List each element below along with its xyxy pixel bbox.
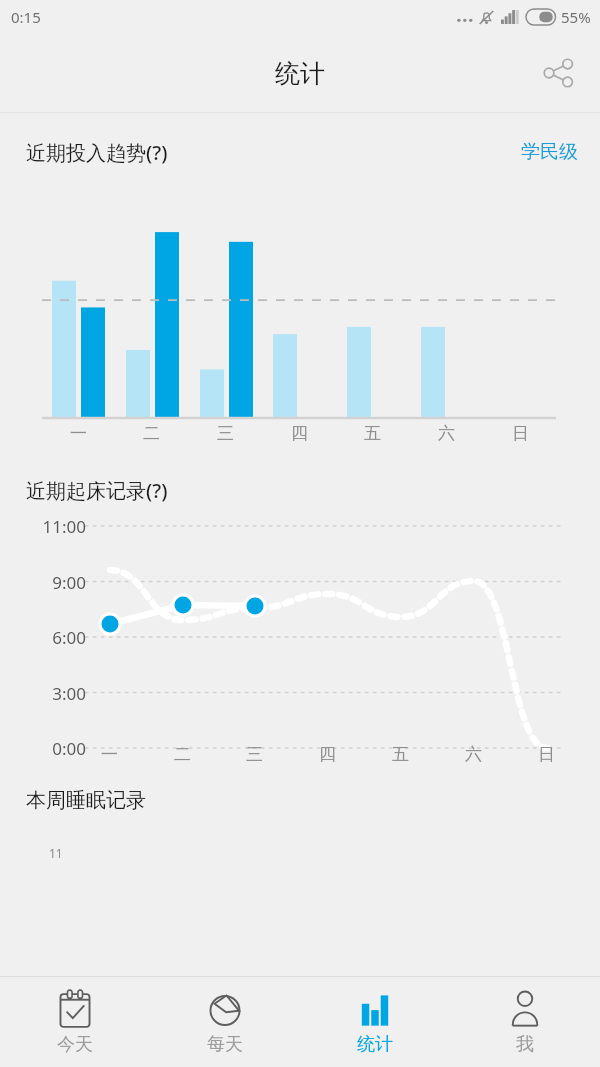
staticText: 0:00 [18, 737, 86, 760]
staticText: 六 [438, 423, 455, 444]
staticText: 9:00 [18, 571, 86, 594]
staticText: 三 [246, 744, 263, 765]
staticText: 55% [561, 7, 591, 27]
staticText: 五 [364, 423, 381, 444]
staticText: 三 [217, 423, 234, 444]
staticText: 每天 [207, 1033, 243, 1056]
staticText: 学民级 [521, 140, 578, 164]
button[interactable]: 我 [450, 977, 600, 1067]
staticText: 统计 [357, 1033, 393, 1056]
staticText: 统计 [275, 58, 325, 89]
staticText: 二 [174, 744, 191, 765]
staticText: 11 [49, 845, 63, 861]
staticText: 6:00 [18, 626, 86, 649]
staticText: 11:00 [18, 515, 86, 538]
staticText: 一 [70, 423, 87, 444]
staticText: 今天 [57, 1033, 93, 1056]
staticText: 日 [512, 423, 529, 444]
staticText: 二 [143, 423, 160, 444]
staticText: 一 [101, 744, 118, 765]
staticText: 日 [538, 744, 555, 765]
staticText: 四 [319, 744, 336, 765]
staticText: 五 [392, 744, 409, 765]
staticText: 近期投入趋势(?) [26, 139, 168, 166]
staticText: 3:00 [18, 682, 86, 705]
staticText: 我 [516, 1033, 534, 1056]
staticText: 0:15 [11, 7, 41, 27]
button[interactable]: 统计 [300, 977, 450, 1067]
staticText: 四 [291, 423, 308, 444]
staticText: 本周睡眠记录 [26, 788, 146, 813]
button[interactable]: 每天 [150, 977, 300, 1067]
button[interactable]: 今天 [0, 977, 150, 1067]
button[interactable]: Share [532, 47, 584, 99]
staticText: 六 [465, 744, 482, 765]
staticText: 近期起床记录(?) [26, 477, 168, 504]
button[interactable]: 学民级 [519, 135, 580, 169]
